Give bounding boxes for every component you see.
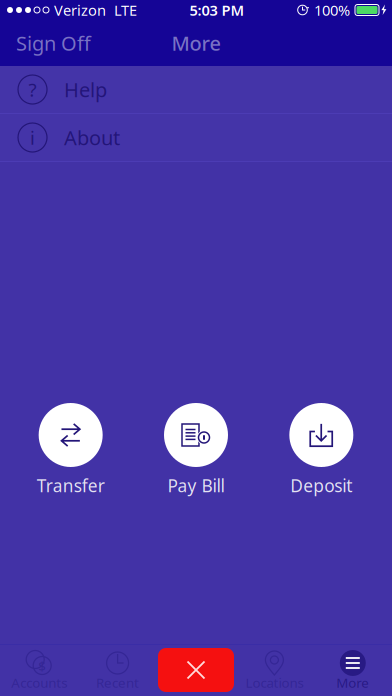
staticText: Recent — [96, 674, 139, 691]
staticText: About — [64, 124, 120, 151]
staticText: i — [30, 125, 35, 150]
button[interactable]: i — [0, 114, 392, 162]
staticText: LTE — [114, 0, 137, 20]
staticText: 100% — [314, 0, 350, 20]
staticText: Verizon — [54, 0, 106, 20]
staticText: $ — [38, 657, 46, 675]
staticText: Accounts — [11, 674, 67, 691]
staticText: 5:03 PM — [189, 0, 244, 20]
button[interactable]: Pay Bill — [133, 403, 259, 497]
button[interactable]: Locations — [235, 645, 314, 696]
button[interactable]: Recent — [78, 645, 157, 696]
button[interactable]: Close — [157, 645, 235, 696]
staticText: More — [171, 30, 220, 56]
button[interactable]: $ — [0, 645, 78, 696]
staticText: More — [336, 674, 369, 691]
staticText: Help — [64, 76, 107, 103]
staticText: ? — [28, 77, 36, 102]
staticText: Transfer — [37, 474, 105, 497]
button[interactable]: Sign Off — [0, 20, 107, 66]
staticText: Sign Off — [16, 30, 91, 56]
staticText: Pay Bill — [167, 474, 224, 497]
button[interactable]: Deposit — [259, 403, 384, 497]
button[interactable]: ? — [0, 66, 392, 114]
button[interactable]: More — [314, 645, 392, 696]
staticText: Deposit — [290, 474, 352, 497]
staticText: Locations — [245, 674, 303, 691]
button[interactable]: Transfer — [8, 403, 133, 497]
